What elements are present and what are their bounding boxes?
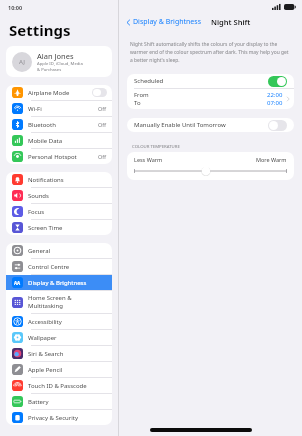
staticText: Touch ID & Passcode [28, 382, 87, 390]
staticText: Focus [28, 208, 45, 216]
staticText: Privacy & Security [28, 414, 79, 422]
staticText: Accessibility [28, 318, 62, 326]
staticText: Off [98, 121, 107, 128]
staticText: & Purchases [37, 67, 62, 73]
staticText: Multitasking [28, 302, 63, 310]
staticText: Alan Jones [37, 51, 74, 61]
button[interactable]: Screen Time [6, 220, 112, 235]
button[interactable]: Apple Pencil [6, 362, 112, 377]
staticText: Apple ID, iCloud, Media [37, 61, 83, 67]
staticText: Siri & Search [28, 350, 64, 358]
button[interactable]: Home Screen & [6, 291, 112, 313]
staticText: Wallpaper [28, 334, 57, 342]
button[interactable]: Manually Enable Until Tomorrow [127, 118, 294, 132]
staticText: 22:00 [267, 91, 283, 99]
staticText: To [134, 99, 141, 107]
button[interactable]: Bluetooth [6, 117, 112, 132]
staticText: 07:00 [267, 99, 283, 107]
staticText: Mobile Data [28, 137, 63, 145]
staticText: Bluetooth [28, 121, 56, 129]
staticText: COLOUR TEMPERATURE [132, 143, 180, 149]
button[interactable]: AA [6, 275, 112, 290]
button[interactable]: Mobile Data [6, 133, 112, 148]
staticText: Display & Brightness [28, 279, 87, 287]
button[interactable]: Control Centre [6, 259, 112, 274]
staticText: Control Centre [28, 263, 70, 271]
button[interactable]: Privacy & Security [6, 410, 112, 425]
staticText: Sounds [28, 192, 49, 200]
button[interactable]: Focus [6, 204, 112, 219]
staticText: Notifications [28, 176, 64, 184]
staticText: Home Screen & [28, 294, 72, 302]
staticText: Night Shift automatically shifts the col… [130, 41, 291, 64]
button[interactable]: Display & Brightness [125, 15, 203, 29]
button[interactable]: Notifications [6, 172, 112, 187]
button[interactable]: From [127, 89, 294, 109]
staticText: More Warm [256, 156, 287, 163]
button[interactable] [134, 166, 287, 176]
staticText: Personal Hotspot [28, 153, 77, 161]
staticText: Apple Pencil [28, 366, 63, 374]
button[interactable]: Battery [6, 394, 112, 409]
button[interactable]: Wallpaper [6, 330, 112, 345]
button[interactable]: Off [268, 120, 287, 131]
staticText: Less Warm [134, 156, 163, 163]
staticText: AA [14, 280, 21, 286]
button[interactable]: Sounds [6, 188, 112, 203]
button[interactable]: AJ [6, 46, 112, 77]
staticText: Screen Time [28, 224, 63, 232]
staticText: From [134, 91, 149, 99]
staticText: Wi-Fi [28, 105, 42, 113]
staticText: Settings [9, 20, 71, 40]
staticText: General [28, 247, 51, 255]
button[interactable]: General [6, 243, 112, 258]
staticText: Night Shift [211, 17, 251, 27]
button[interactable]: Scheduled [127, 74, 294, 88]
staticText: 10:00 [8, 4, 23, 11]
staticText: Scheduled [134, 77, 164, 85]
button[interactable]: Siri & Search [6, 346, 112, 361]
button[interactable]: Touch ID & Passcode [6, 378, 112, 393]
staticText: Display & Brightness [133, 17, 202, 27]
staticText: Manually Enable Until Tomorrow [134, 121, 226, 129]
staticText: Airplane Mode [28, 89, 70, 97]
staticText: Off [98, 153, 107, 160]
staticText: Off [98, 105, 107, 112]
button[interactable]: On [268, 76, 287, 87]
button[interactable]: Accessibility [6, 314, 112, 329]
button[interactable]: Wi-Fi [6, 101, 112, 116]
button[interactable]: Personal Hotspot [6, 149, 112, 164]
button[interactable]: Airplane Mode [6, 85, 112, 100]
staticText: Battery [28, 398, 49, 406]
staticText: AJ [19, 58, 25, 66]
